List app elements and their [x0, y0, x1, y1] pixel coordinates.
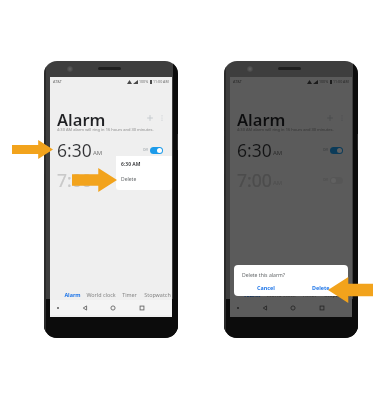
staticText: AM: [273, 149, 283, 157]
button[interactable]: Alarm: [239, 288, 265, 300]
button[interactable]: Alarm: [59, 288, 85, 300]
staticText: Alarm: [237, 108, 286, 130]
button[interactable]: Toggle alarm: [330, 177, 343, 184]
staticText: Alarm: [244, 291, 261, 298]
staticText: AM: [93, 179, 103, 187]
staticText: 11:00 AM: [153, 79, 169, 84]
button[interactable]: Recents: [318, 304, 326, 312]
button[interactable]: 6:30: [50, 138, 172, 162]
button[interactable]: Back: [81, 304, 89, 312]
staticText: Off: [143, 148, 148, 152]
button[interactable]: Recents: [138, 304, 146, 312]
staticText: AM: [273, 179, 283, 187]
button[interactable]: Keyboard: [235, 305, 241, 311]
button[interactable]: Back: [261, 304, 269, 312]
button[interactable]: 7:00: [230, 168, 352, 192]
staticText: 6:30: [57, 138, 92, 162]
staticText: AM: [93, 149, 103, 157]
staticText: Alarm: [64, 291, 81, 298]
staticText: Alarm: [57, 108, 106, 130]
staticText: AT&T: [233, 79, 242, 84]
button[interactable]: 6:30: [230, 138, 352, 162]
staticText: World clock: [266, 291, 296, 298]
button[interactable]: Timer: [117, 288, 142, 300]
staticText: Delete: [312, 284, 330, 291]
staticText: 100%: [319, 79, 329, 84]
staticText: Stopwatch: [144, 291, 171, 298]
staticText: Delete this alarm?: [242, 272, 285, 279]
button[interactable]: Keyboard: [55, 305, 61, 311]
staticText: Off: [323, 148, 328, 152]
staticText: 6:30 AM: [121, 161, 141, 168]
staticText: Timer: [302, 291, 317, 298]
button[interactable]: Delete: [310, 282, 332, 292]
button[interactable]: Delete: [116, 172, 172, 186]
button[interactable]: World clock: [265, 288, 297, 300]
staticText: 4:30 AM alarm will ring in 16 hours and …: [237, 127, 334, 132]
staticText: 6:30: [237, 138, 272, 162]
button[interactable]: Toggle alarm: [150, 147, 163, 154]
staticText: 4:30 AM alarm will ring in 16 hours and …: [57, 127, 154, 132]
button[interactable]: Stopwatch: [142, 288, 172, 300]
staticText: Cancel: [257, 284, 275, 291]
staticText: 100%: [139, 79, 149, 84]
button[interactable]: 7:00: [50, 168, 172, 192]
button[interactable]: Timer: [297, 288, 322, 300]
staticText: 7:00: [57, 168, 92, 192]
staticText: AT&T: [53, 79, 62, 84]
button[interactable]: World clock: [85, 288, 117, 300]
staticText: 7:00: [237, 168, 272, 192]
button[interactable]: Home: [289, 304, 297, 312]
staticText: 11:00 AM: [333, 79, 349, 84]
button[interactable]: Cancel: [255, 282, 277, 292]
staticText: Timer: [122, 291, 137, 298]
button[interactable]: Add alarm: [144, 112, 156, 124]
staticText: Stopwatch: [324, 291, 351, 298]
button[interactable]: Stopwatch: [322, 288, 352, 300]
button[interactable]: Add alarm: [324, 112, 336, 124]
button[interactable]: Toggle alarm: [330, 147, 343, 154]
staticText: World clock: [86, 291, 116, 298]
button[interactable]: Home: [109, 304, 117, 312]
staticText: Delete: [121, 176, 137, 183]
